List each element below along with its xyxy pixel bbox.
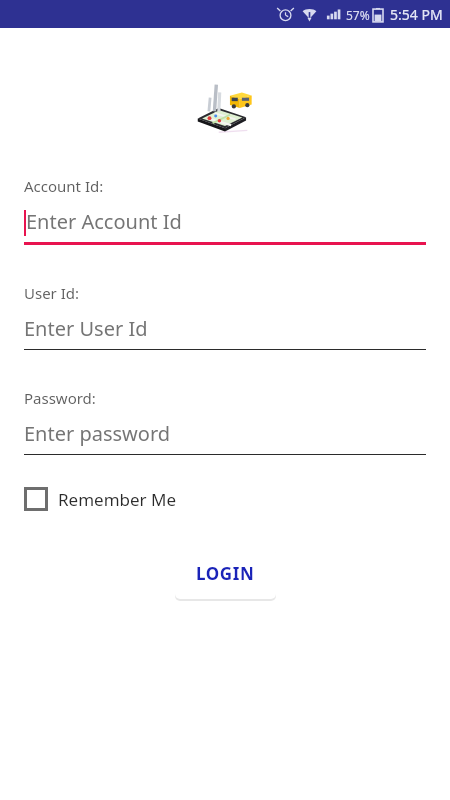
staticText: Enter password	[24, 420, 171, 447]
staticText: Enter User Id	[24, 315, 148, 342]
button[interactable]: LOGIN	[175, 548, 276, 599]
staticText: Account Id:	[24, 176, 104, 196]
staticText: Remember Me	[58, 488, 177, 511]
button[interactable]: User Id:	[24, 283, 426, 350]
staticText: Enter Account Id	[26, 208, 182, 235]
button[interactable]: Remember Me	[24, 487, 177, 511]
staticText: User Id:	[24, 283, 80, 303]
staticText: 57%	[346, 7, 370, 23]
staticText: LOGIN	[196, 562, 255, 585]
button[interactable]: Password:	[24, 388, 426, 455]
button[interactable]: Account Id:	[24, 176, 426, 245]
staticText: Password:	[24, 388, 96, 408]
staticText: 5:54 PM	[390, 5, 443, 24]
